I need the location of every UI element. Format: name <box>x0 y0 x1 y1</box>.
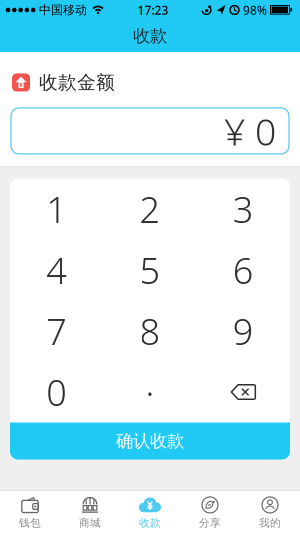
button[interactable]: 6 <box>197 239 290 300</box>
staticText: · <box>145 368 154 416</box>
staticText: 收款 <box>139 516 161 529</box>
button[interactable]: ¥ 0 <box>0 108 300 154</box>
staticText: 收款金额 <box>39 71 115 94</box>
staticText: 收款 <box>133 25 167 47</box>
staticText: 6 <box>233 246 254 294</box>
staticText: ¥ 0 <box>224 106 276 156</box>
button[interactable]: 5 <box>103 239 197 300</box>
staticText: 3 <box>233 185 254 233</box>
staticText: 1 <box>46 185 67 233</box>
staticText: 4 <box>46 246 67 294</box>
button[interactable]: 钱包 <box>0 491 60 533</box>
button[interactable]: 0 <box>10 361 103 422</box>
button[interactable]: 3 <box>197 178 290 239</box>
staticText: 9 <box>233 307 254 355</box>
staticText: 8 <box>139 307 160 355</box>
staticText: 确认收款 <box>116 430 184 452</box>
button[interactable]: 我的 <box>240 491 300 533</box>
button[interactable]: · <box>103 361 197 422</box>
button[interactable]: 9 <box>197 300 290 361</box>
button[interactable]: 确认收款 <box>10 422 290 459</box>
button[interactable]: 1 <box>10 178 103 239</box>
staticText: 2 <box>139 185 160 233</box>
button[interactable]: 7 <box>10 300 103 361</box>
button[interactable]: 分享 <box>180 491 240 533</box>
button[interactable]: 4 <box>10 239 103 300</box>
button[interactable]: 删除 <box>197 361 290 422</box>
staticText: 钱包 <box>19 516 41 529</box>
button[interactable]: 商城 <box>60 491 120 533</box>
button[interactable]: 收款 <box>120 491 180 533</box>
staticText: 分享 <box>199 516 221 529</box>
button[interactable]: 2 <box>103 178 197 239</box>
staticText: 商城 <box>79 516 101 529</box>
staticText: 5 <box>139 246 160 294</box>
staticText: 7 <box>46 307 67 355</box>
staticText: 我的 <box>259 516 281 529</box>
staticText: 17:23 <box>137 2 168 18</box>
staticText: 中国移动 <box>39 3 87 17</box>
staticText: 98% <box>243 2 267 18</box>
button[interactable]: 8 <box>103 300 197 361</box>
staticText: 0 <box>46 368 67 416</box>
